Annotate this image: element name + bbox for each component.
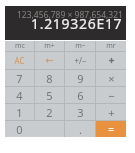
button[interactable]: 5 bbox=[35, 87, 64, 103]
button[interactable]: AC bbox=[5, 52, 34, 69]
button[interactable]: 1 bbox=[5, 104, 34, 120]
staticText: × bbox=[108, 71, 115, 86]
staticText: . bbox=[79, 122, 82, 137]
staticText: mr bbox=[106, 41, 116, 51]
button[interactable]: × bbox=[96, 70, 126, 86]
button[interactable]: 3 bbox=[65, 104, 95, 120]
button[interactable]: − bbox=[96, 87, 126, 103]
staticText: + bbox=[108, 105, 115, 120]
staticText: 3 bbox=[77, 105, 84, 120]
staticText: 8 bbox=[46, 71, 53, 86]
button[interactable]: m− bbox=[65, 41, 95, 51]
button[interactable]: 9 bbox=[65, 70, 95, 86]
staticText: 2 bbox=[46, 105, 53, 120]
staticText: 4 bbox=[16, 88, 23, 103]
staticText: 6 bbox=[77, 88, 84, 103]
staticText: +/− bbox=[74, 55, 87, 66]
button[interactable]: 8 bbox=[35, 70, 64, 86]
staticText: m+ bbox=[44, 41, 55, 51]
staticText: mc bbox=[15, 41, 25, 51]
button[interactable]: ← bbox=[35, 52, 64, 69]
button[interactable]: 0 bbox=[5, 121, 34, 137]
staticText: m− bbox=[75, 41, 86, 51]
staticText: − bbox=[108, 88, 115, 103]
staticText: AC bbox=[14, 55, 25, 66]
staticText: 1.219326E17 bbox=[31, 14, 123, 33]
staticText: 5 bbox=[46, 88, 53, 103]
staticText: ← bbox=[45, 55, 54, 67]
button[interactable]: 7 bbox=[5, 70, 34, 86]
button[interactable]: +/− bbox=[65, 52, 95, 69]
button[interactable]: + bbox=[96, 104, 126, 120]
button[interactable]: 2 bbox=[35, 104, 64, 120]
button[interactable]: mc bbox=[5, 41, 34, 51]
staticText: 0 bbox=[16, 122, 23, 137]
staticText: 1 bbox=[16, 105, 23, 120]
button[interactable]: = bbox=[96, 121, 126, 137]
staticText: 7 bbox=[16, 71, 23, 86]
staticText: = bbox=[108, 122, 114, 136]
staticText: 123,456,789 × 987,654,321 bbox=[17, 9, 123, 21]
button[interactable]: 4 bbox=[5, 87, 34, 103]
button[interactable]: 6 bbox=[65, 87, 95, 103]
button[interactable]: m+ bbox=[35, 41, 64, 51]
button[interactable]: . bbox=[65, 121, 95, 137]
button[interactable]: mr bbox=[96, 41, 126, 51]
button[interactable]: Divide bbox=[96, 52, 126, 69]
staticText: 9 bbox=[77, 71, 84, 86]
